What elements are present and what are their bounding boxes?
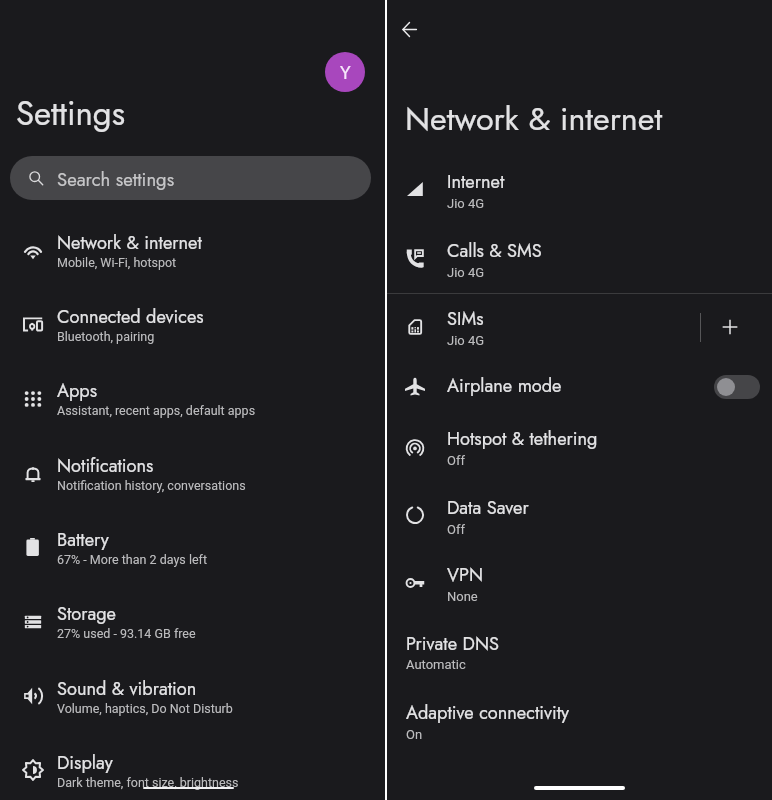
staticText: VPN <box>447 562 484 588</box>
staticText: Search settings <box>57 166 175 193</box>
staticText: Data Saver <box>447 495 529 521</box>
staticText: Jio 4G <box>447 265 485 280</box>
button[interactable] <box>387 548 772 617</box>
staticText: Network & internet <box>57 230 202 256</box>
staticText: Settings <box>16 90 125 138</box>
button[interactable]: Airplane mode toggle <box>714 375 760 399</box>
button[interactable]: Add SIM <box>710 307 750 347</box>
staticText: 67% - More than 2 days left <box>57 552 207 567</box>
staticText: Volume, haptics, Do Not Disturb <box>57 701 233 716</box>
button[interactable] <box>0 438 385 512</box>
staticText: Y <box>340 59 351 86</box>
staticText: Display <box>57 750 113 776</box>
button[interactable] <box>0 289 385 363</box>
button[interactable] <box>0 215 385 289</box>
staticText: Adaptive connectivity <box>406 700 570 726</box>
button[interactable] <box>387 155 772 224</box>
staticText: Notifications <box>57 453 154 479</box>
staticText: Private DNS <box>406 631 499 657</box>
button[interactable] <box>0 735 385 800</box>
staticText: Bluetooth, pairing <box>57 329 155 344</box>
staticText: None <box>447 589 478 604</box>
button[interactable]: Back <box>393 13 425 45</box>
button[interactable] <box>387 617 772 686</box>
button[interactable] <box>0 363 385 437</box>
staticText: Off <box>447 453 465 468</box>
staticText: Jio 4G <box>447 196 485 211</box>
staticText: Dark theme, font size, brightness <box>57 775 239 790</box>
button[interactable] <box>387 293 772 362</box>
button[interactable] <box>0 586 385 660</box>
button[interactable] <box>387 412 772 481</box>
staticText: Hotspot & tethering <box>447 426 598 452</box>
staticText: On <box>406 727 423 742</box>
button[interactable] <box>0 661 385 735</box>
button[interactable] <box>387 224 772 293</box>
staticText: Internet <box>447 169 505 195</box>
button[interactable] <box>387 686 772 756</box>
staticText: Storage <box>57 601 116 627</box>
button[interactable] <box>0 512 385 586</box>
staticText: Apps <box>57 378 98 404</box>
staticText: Off <box>447 522 465 537</box>
staticText: Assistant, recent apps, default apps <box>57 403 256 418</box>
staticText: Jio 4G <box>447 333 485 348</box>
staticText: Calls & SMS <box>447 238 542 264</box>
staticText: SIMs <box>447 306 484 332</box>
staticText: Network & internet <box>405 95 663 142</box>
staticText: Battery <box>57 527 109 553</box>
button[interactable] <box>387 359 772 414</box>
staticText: Airplane mode <box>447 373 562 399</box>
staticText: 27% used - 93.14 GB free <box>57 626 196 641</box>
staticText: Connected devices <box>57 304 204 330</box>
staticText: Mobile, Wi-Fi, hotspot <box>57 255 177 270</box>
staticText: Sound & vibration <box>57 676 197 702</box>
staticText: Notification history, conversations <box>57 478 246 493</box>
button[interactable]: Search settings <box>10 156 371 200</box>
button[interactable]: Account <box>325 52 365 92</box>
button[interactable] <box>387 481 772 550</box>
staticText: Automatic <box>406 657 466 672</box>
